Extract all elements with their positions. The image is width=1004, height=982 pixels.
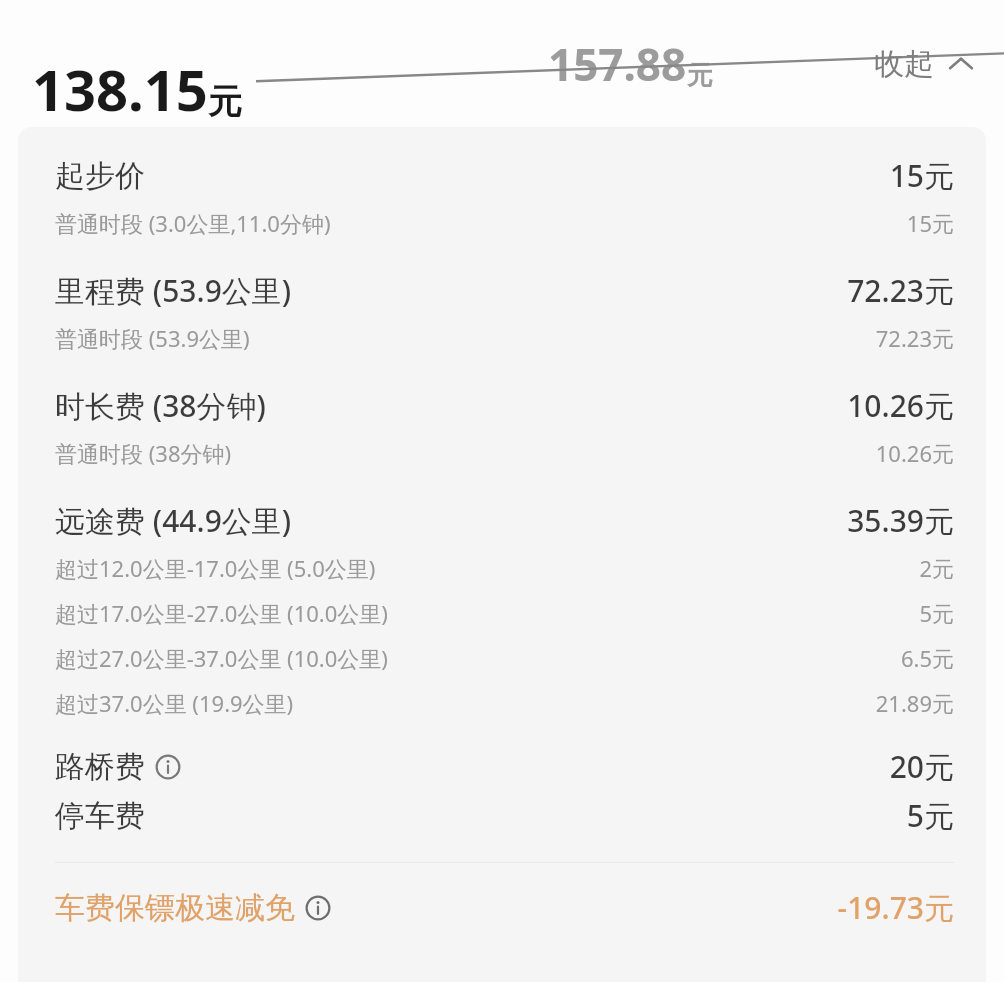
staticText: 超过12.0公里-17.0公里 (5.0公里) bbox=[55, 553, 376, 583]
staticText: 35.39元 bbox=[847, 500, 954, 541]
staticText: 10.26元 bbox=[875, 438, 954, 468]
button[interactable]: 超过12.0公里-17.0公里 (5.0公里) bbox=[55, 553, 954, 583]
staticText: 起步价 bbox=[55, 157, 145, 195]
staticText: -19.73元 bbox=[837, 887, 954, 928]
staticText: 6.5元 bbox=[900, 643, 954, 673]
button[interactable]: 起步价 bbox=[55, 155, 954, 196]
staticText: 时长费 (38分钟) bbox=[55, 385, 266, 426]
staticText: 普通时段 (53.9公里) bbox=[55, 323, 250, 353]
button[interactable]: 超过17.0公里-27.0公里 (10.0公里) bbox=[55, 598, 954, 628]
button[interactable]: 里程费 (53.9公里) bbox=[55, 270, 954, 311]
staticText: 普通时段 (38分钟) bbox=[55, 438, 232, 468]
staticText: 20元 bbox=[889, 746, 954, 787]
staticText: 157.88 bbox=[548, 34, 687, 94]
button[interactable]: 停车费 bbox=[55, 795, 954, 836]
staticText: 10.26元 bbox=[847, 385, 954, 426]
staticText: 21.89元 bbox=[875, 688, 954, 718]
other: Toll fee info bbox=[155, 754, 181, 780]
staticText: 停车费 bbox=[55, 797, 145, 835]
staticText: 路桥费 bbox=[55, 748, 145, 786]
staticText: 超过37.0公里 (19.9公里) bbox=[55, 688, 294, 718]
staticText: 远途费 (44.9公里) bbox=[55, 500, 292, 541]
button[interactable]: 普通时段 (3.0公里,11.0分钟) bbox=[55, 208, 954, 238]
staticText: 车费保镖极速减免 bbox=[55, 889, 295, 927]
button[interactable]: 超过27.0公里-37.0公里 (10.0公里) bbox=[55, 643, 954, 673]
other: Collapse bbox=[948, 51, 974, 77]
button[interactable]: 普通时段 (53.9公里) bbox=[55, 323, 954, 353]
button[interactable]: 超过37.0公里 (19.9公里) bbox=[55, 688, 954, 718]
staticText: 超过27.0公里-37.0公里 (10.0公里) bbox=[55, 643, 388, 673]
staticText: 收起 bbox=[874, 45, 934, 83]
button[interactable]: 车费保镖极速减免 bbox=[55, 887, 954, 928]
staticText: 5元 bbox=[906, 795, 954, 836]
staticText: 72.23元 bbox=[847, 270, 954, 311]
staticText: 普通时段 (3.0公里,11.0分钟) bbox=[55, 208, 331, 238]
button[interactable]: 远途费 (44.9公里) bbox=[55, 500, 954, 541]
staticText: 138.15 bbox=[32, 51, 208, 127]
staticText: 15元 bbox=[889, 155, 954, 196]
staticText: 里程费 (53.9公里) bbox=[55, 270, 292, 311]
staticText: 元 bbox=[687, 59, 713, 92]
other: Discount info bbox=[305, 895, 331, 921]
staticText: 元 bbox=[208, 80, 242, 123]
staticText: 超过17.0公里-27.0公里 (10.0公里) bbox=[55, 598, 388, 628]
button[interactable]: 时长费 (38分钟) bbox=[55, 385, 954, 426]
button[interactable]: 路桥费 bbox=[55, 746, 954, 787]
button[interactable]: 普通时段 (38分钟) bbox=[55, 438, 954, 468]
staticText: 15元 bbox=[906, 208, 954, 238]
staticText: 5元 bbox=[919, 598, 954, 628]
staticText: 72.23元 bbox=[875, 323, 954, 353]
staticText: 2元 bbox=[919, 553, 954, 583]
button[interactable]: 收起 bbox=[874, 45, 974, 83]
